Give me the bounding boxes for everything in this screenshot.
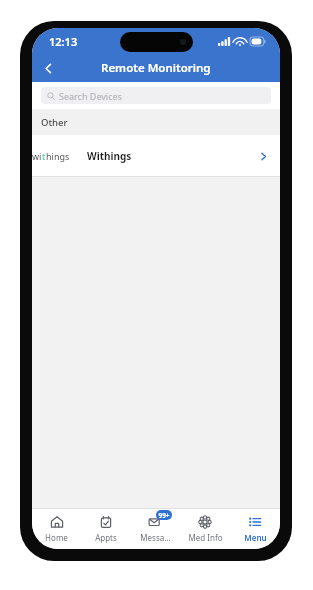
staticText: Remote Monitoring	[101, 60, 211, 76]
staticText: wi	[32, 150, 42, 162]
staticText: Home	[45, 532, 68, 543]
staticText: Appts	[95, 532, 117, 543]
staticText: Withings	[87, 149, 132, 163]
staticText: 99+	[158, 511, 170, 520]
button[interactable]: 99+	[130, 509, 180, 549]
button[interactable]: Menu	[230, 509, 280, 549]
staticText: Menu	[244, 532, 267, 543]
button[interactable]: Search Devices	[41, 87, 271, 104]
staticText: Med Info	[188, 532, 223, 543]
staticText: 12:13	[49, 34, 78, 49]
button[interactable]: Home	[32, 509, 81, 549]
button[interactable]: Appts	[81, 509, 130, 549]
staticText: Search Devices	[59, 90, 122, 102]
staticText: hings	[46, 150, 70, 162]
button[interactable]: Back	[32, 54, 64, 82]
button[interactable]: wi	[32, 135, 280, 177]
staticText: Other	[41, 116, 68, 129]
staticText: t	[42, 150, 46, 162]
staticText: Messa...	[140, 532, 171, 543]
button[interactable]: Med Info	[180, 509, 230, 549]
